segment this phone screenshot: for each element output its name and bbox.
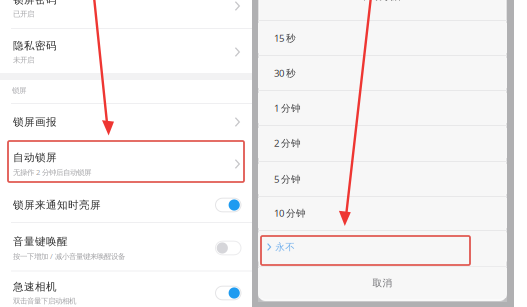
button[interactable]: 5 分钟 bbox=[258, 164, 507, 194]
button[interactable]: 30 秒 bbox=[258, 58, 507, 88]
button[interactable]: 取消 bbox=[258, 268, 507, 298]
staticText: 2 分钟 bbox=[274, 136, 301, 150]
button[interactable]: 锁屏来通知时亮屏 bbox=[0, 187, 252, 223]
staticText: 锁屏密码 bbox=[13, 0, 57, 7]
button[interactable]: 15 秒 bbox=[258, 23, 507, 53]
staticText: 自动锁屏 bbox=[13, 151, 57, 164]
staticText: 1 分钟 bbox=[274, 101, 301, 115]
staticText: 永不 bbox=[275, 241, 295, 253]
staticText: 锁屏 bbox=[12, 86, 26, 95]
button[interactable]: 2 分钟 bbox=[258, 128, 507, 158]
staticText: 15 秒 bbox=[274, 31, 296, 45]
button[interactable]: 10 分钟 bbox=[258, 198, 507, 228]
staticText: 隐私密码 bbox=[13, 39, 57, 52]
staticText: 双击音量下启动相机 bbox=[13, 296, 76, 306]
button[interactable]: 1 分钟 bbox=[258, 93, 507, 123]
button[interactable]: 锁屏密码 bbox=[0, 0, 252, 24]
staticText: 无操作 2 分钟后自动锁屏 bbox=[13, 167, 91, 177]
button[interactable]: 自动锁屏 bbox=[0, 146, 252, 182]
staticText: 锁屏来通知时亮屏 bbox=[13, 198, 101, 212]
staticText: 已开启 bbox=[13, 9, 34, 19]
staticText: 30 秒 bbox=[274, 66, 296, 80]
staticText: 自动锁屏 bbox=[362, 0, 402, 2]
staticText: 急速相机 bbox=[13, 280, 57, 293]
staticText: 10 分钟 bbox=[274, 206, 306, 220]
staticText: 音量键唤醒 bbox=[13, 235, 68, 248]
staticText: 取消 bbox=[372, 277, 392, 289]
staticText: 未开启 bbox=[13, 55, 34, 65]
staticText: 5 分钟 bbox=[274, 172, 301, 186]
button[interactable]: 锁屏画报 bbox=[0, 104, 252, 140]
button[interactable]: 永不 bbox=[258, 232, 507, 261]
staticText: 锁屏画报 bbox=[13, 115, 57, 129]
button[interactable]: 音量键唤醒 bbox=[0, 230, 252, 266]
button[interactable]: 急速相机 bbox=[0, 275, 252, 307]
button[interactable]: 隐私密码 bbox=[0, 34, 252, 70]
staticText: 按一下增加 / 减小音量键来唤醒设备 bbox=[13, 251, 125, 261]
